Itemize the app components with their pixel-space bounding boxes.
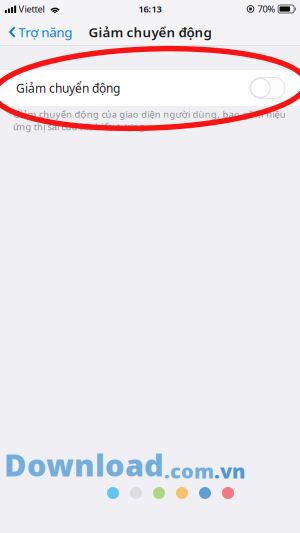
staticText: Trợ năng — [18, 23, 72, 41]
staticText: Viettel — [18, 3, 44, 15]
button[interactable]: Giảm chuyển động — [0, 70, 300, 106]
staticText: Download — [4, 444, 164, 485]
staticText: .com — [164, 457, 214, 484]
staticText: Giảm chuyển động của giao diện người dùn… — [13, 108, 286, 133]
staticText: .vn — [214, 457, 245, 484]
staticText: 16:13 — [138, 3, 161, 15]
staticText: Giảm chuyển động — [88, 23, 211, 41]
staticText: Giảm chuyển động — [16, 80, 120, 96]
button[interactable]: Trợ năng — [0, 16, 77, 48]
staticText: 70% — [258, 3, 276, 15]
